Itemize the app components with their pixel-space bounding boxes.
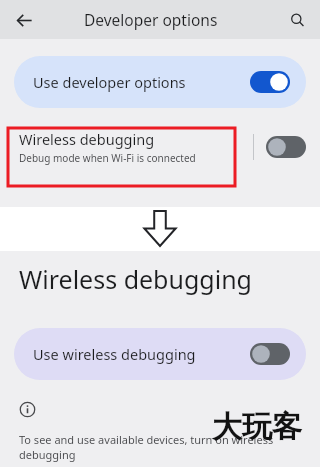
staticText: Use wireless debugging bbox=[33, 344, 250, 364]
button[interactable]: Wireless debugging bbox=[0, 119, 320, 175]
staticText: Developer options bbox=[84, 9, 218, 30]
staticText: Wireless debugging bbox=[19, 262, 252, 296]
button[interactable]: Search bbox=[283, 6, 311, 34]
button[interactable]: Use wireless debugging toggle bbox=[250, 343, 290, 365]
staticText: To see and use available devices, turn o… bbox=[19, 432, 274, 462]
staticText: 大玩客 bbox=[212, 408, 302, 446]
staticText: Wireless debugging bbox=[19, 129, 155, 149]
button[interactable]: Use wireless debugging bbox=[14, 328, 306, 380]
button[interactable]: Back bbox=[9, 5, 39, 35]
button[interactable]: Use developer options bbox=[14, 56, 306, 108]
staticText: Use developer options bbox=[33, 72, 250, 92]
button[interactable]: Use developer options toggle bbox=[250, 71, 290, 93]
button[interactable]: Wireless debugging toggle bbox=[266, 136, 306, 158]
staticText: Debug mode when Wi-Fi is connected bbox=[19, 151, 196, 165]
